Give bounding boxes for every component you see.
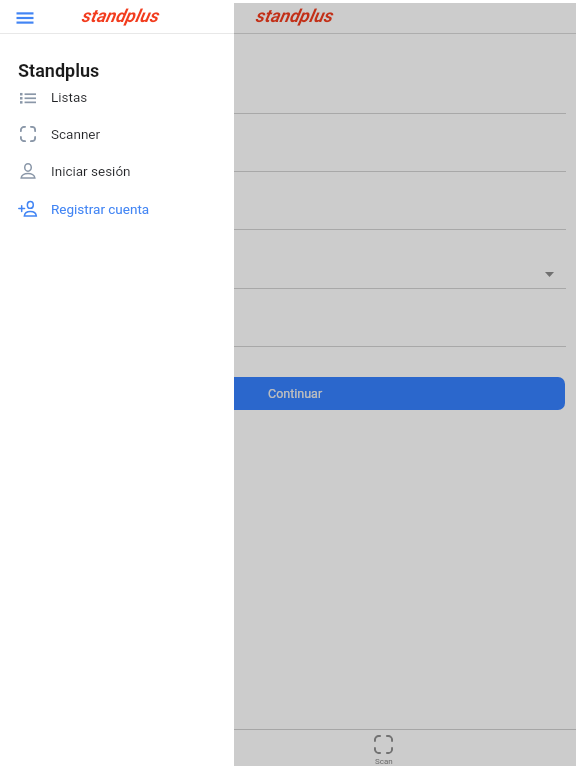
staticText: Scan bbox=[375, 757, 393, 766]
button[interactable]: Scan bbox=[365, 735, 402, 766]
staticText: Continuar bbox=[268, 386, 323, 401]
button[interactable]: Continuar bbox=[12, 377, 565, 410]
button[interactable]: Scanner bbox=[0, 115, 234, 152]
staticText: Registrar cuenta bbox=[51, 201, 150, 217]
staticText: Listas bbox=[51, 89, 88, 105]
staticText: standplus bbox=[81, 5, 159, 26]
button[interactable]: Listas bbox=[0, 78, 234, 115]
staticText: Scanner bbox=[51, 126, 101, 142]
staticText: standplus bbox=[255, 5, 333, 26]
button[interactable]: Registrar cuenta bbox=[0, 190, 234, 227]
button[interactable]: Open navigation menu bbox=[7, 0, 43, 33]
staticText: Iniciar sesión bbox=[51, 163, 131, 179]
button[interactable]: Iniciar sesión bbox=[0, 152, 234, 189]
staticText: Standplus bbox=[18, 60, 100, 81]
